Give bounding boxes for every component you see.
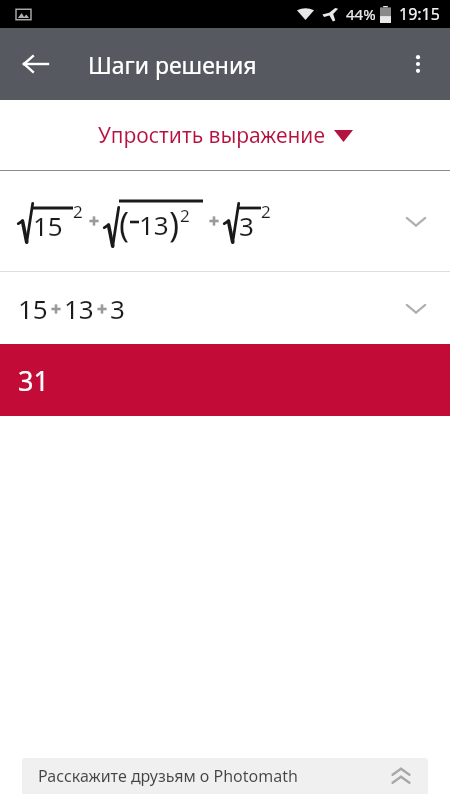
other: Expand share panel [388, 763, 414, 789]
staticText: 13 [64, 291, 94, 326]
staticText: 3 [110, 291, 125, 326]
staticText: 2 [261, 200, 271, 223]
button[interactable]: More options [392, 38, 444, 90]
staticText: 2 [180, 204, 190, 227]
other: Expand step [400, 292, 432, 324]
button[interactable]: 31 [0, 344, 450, 416]
staticText: Шаги решения [88, 49, 257, 80]
staticText: ( [119, 201, 130, 247]
button[interactable]: Back [8, 36, 64, 92]
button[interactable]: Упростить выражение [0, 100, 450, 170]
staticText: 15 [18, 291, 48, 326]
staticText: 13 [139, 207, 169, 242]
button[interactable]: 15 [0, 171, 450, 271]
staticText: Расскажите друзьям о Photomath [38, 765, 298, 787]
staticText: ) [169, 201, 180, 247]
staticText: 44% [346, 4, 376, 24]
button[interactable]: Расскажите друзьям о Photomath [22, 758, 428, 794]
staticText: 3 [239, 208, 254, 243]
button[interactable]: 15 [0, 272, 450, 344]
staticText: Упростить выражение [98, 121, 325, 150]
staticText: 31 [18, 362, 49, 399]
staticText: 15 [33, 208, 63, 243]
other: Expand step [400, 205, 432, 237]
staticText: 2 [73, 200, 83, 223]
staticText: 19:15 [399, 3, 440, 25]
